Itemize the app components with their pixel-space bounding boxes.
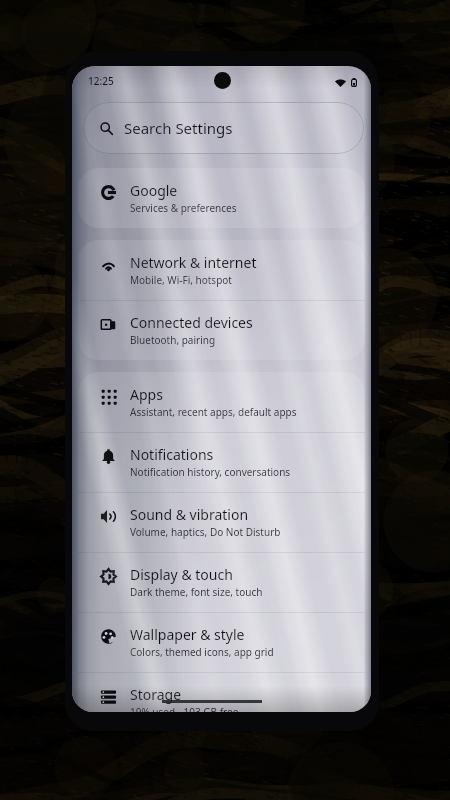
- staticText: Volume, haptics, Do Not Disturb: [130, 525, 281, 539]
- staticText: Wallpaper & style: [130, 625, 245, 644]
- staticText: Assistant, recent apps, default apps: [130, 405, 297, 419]
- button[interactable]: Sound & vibration: [78, 492, 365, 552]
- staticText: Notifications: [130, 445, 214, 464]
- button[interactable]: Display & touch: [78, 552, 365, 612]
- staticText: 19% used - 103 GB free: [130, 705, 239, 712]
- staticText: Storage: [130, 685, 182, 704]
- staticText: Display & touch: [130, 565, 233, 584]
- button[interactable]: Search Settings: [83, 102, 364, 154]
- button[interactable]: Storage: [78, 672, 365, 712]
- button[interactable]: Google: [78, 168, 365, 228]
- staticText: Search Settings: [124, 118, 233, 138]
- button[interactable]: Wallpaper & style: [78, 612, 365, 672]
- staticText: Colors, themed icons, app grid: [130, 645, 274, 659]
- staticText: Sound & vibration: [130, 505, 249, 524]
- staticText: Bluetooth, pairing: [130, 333, 216, 347]
- button[interactable]: Apps: [78, 372, 365, 432]
- staticText: Notification history, conversations: [130, 465, 291, 479]
- staticText: 12:25: [88, 74, 114, 88]
- button[interactable]: Network & internet: [78, 240, 365, 300]
- button[interactable]: Connected devices: [78, 300, 365, 360]
- staticText: Network & internet: [130, 253, 257, 272]
- staticText: Connected devices: [130, 313, 253, 332]
- button[interactable]: Notifications: [78, 432, 365, 492]
- staticText: Dark theme, font size, touch: [130, 585, 263, 599]
- staticText: Services & preferences: [130, 201, 237, 215]
- staticText: Apps: [130, 385, 163, 404]
- staticText: Google: [130, 181, 178, 200]
- staticText: Mobile, Wi-Fi, hotspot: [130, 273, 232, 287]
